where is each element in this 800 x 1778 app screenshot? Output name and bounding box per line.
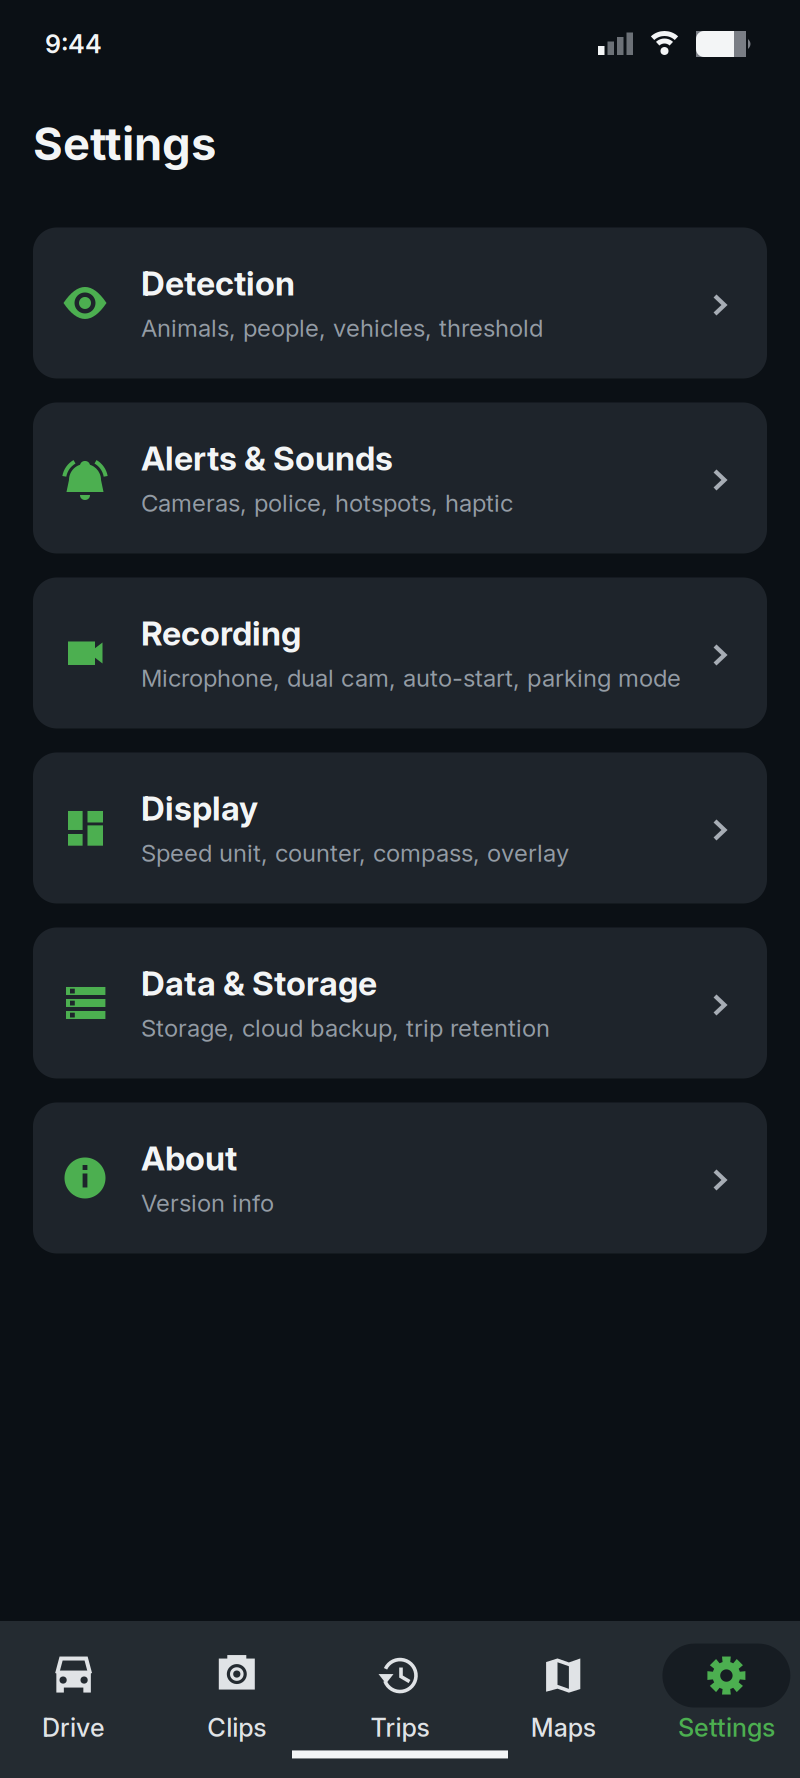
staticText: Trips [370,1713,429,1742]
staticText: Detection [141,264,295,303]
button[interactable]: Drive [0,1644,155,1742]
button[interactable]: Display [33,752,767,903]
button[interactable]: Data & Storage [33,927,767,1078]
button[interactable]: About [33,1102,767,1253]
staticText: Drive [42,1713,105,1742]
button[interactable]: Alerts & Sounds [33,402,767,553]
button[interactable]: Detection [33,227,767,378]
staticText: Cameras, police, hotspots, haptic [141,489,513,517]
staticText: Version info [141,1189,274,1217]
staticText: About [141,1139,237,1178]
button[interactable]: Trips [318,1644,482,1742]
staticText: Clips [207,1713,266,1742]
staticText: Settings [33,117,216,170]
staticText: Recording [141,614,301,653]
staticText: Display [141,789,258,828]
button[interactable]: Recording [33,577,767,728]
button[interactable]: Clips [155,1644,318,1742]
staticText: Alerts & Sounds [141,439,393,478]
button[interactable]: Maps [482,1644,645,1742]
button[interactable]: Settings [645,1644,800,1742]
staticText: Maps [531,1713,596,1742]
staticText: Storage, cloud backup, trip retention [141,1014,550,1042]
staticText: Microphone, dual cam, auto-start, parkin… [141,664,681,692]
staticText: Animals, people, vehicles, threshold [141,314,543,342]
staticText: Settings [678,1713,775,1742]
staticText: 9:44 [45,29,102,59]
staticText: Speed unit, counter, compass, overlay [141,839,569,867]
staticText: Data & Storage [141,964,377,1003]
